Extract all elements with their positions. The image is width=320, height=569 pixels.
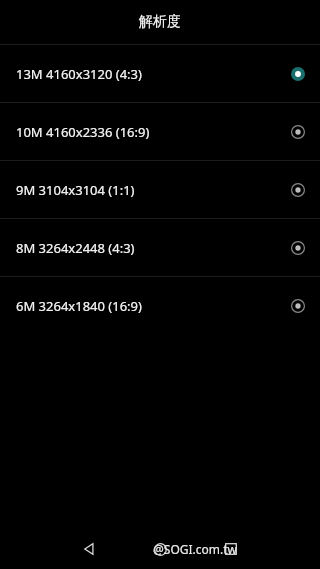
staticText: @SOGI.com.tw [153,541,237,557]
button[interactable]: Recent apps [204,529,258,569]
staticText: 解析度 [139,13,181,31]
button[interactable]: 6M 3264x1840 (16:9) [0,277,320,334]
staticText: 6M 3264x1840 (16:9) [16,297,280,315]
button[interactable]: 13M 4160x3120 (4:3) [0,45,320,102]
button[interactable]: Back [62,529,116,569]
staticText: 13M 4160x3120 (4:3) [16,65,280,83]
button[interactable]: 9M 3104x3104 (1:1) [0,161,320,218]
staticText: 9M 3104x3104 (1:1) [16,181,280,199]
button[interactable]: 10M 4160x2336 (16:9) [0,103,320,160]
button[interactable]: 8M 3264x2448 (4:3) [0,219,320,276]
staticText: 8M 3264x2448 (4:3) [16,239,280,257]
staticText: 10M 4160x2336 (16:9) [16,123,280,141]
button[interactable]: Home [133,529,187,569]
